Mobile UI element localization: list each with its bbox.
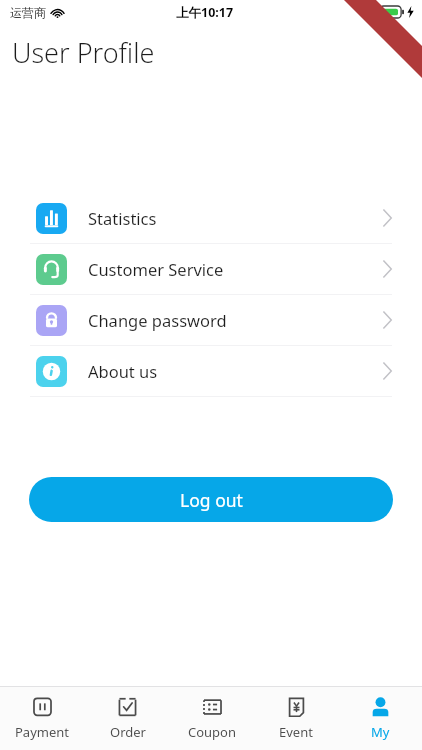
- button[interactable]: Coupon: [170, 687, 254, 750]
- staticText: Log out: [180, 488, 243, 512]
- button[interactable]: My: [338, 687, 422, 750]
- staticText: Statistics: [88, 207, 157, 229]
- staticText: Order: [110, 723, 146, 741]
- button[interactable]: About us: [0, 346, 422, 396]
- staticText: 运营商: [10, 5, 46, 20]
- button[interactable]: Event: [254, 687, 338, 750]
- button[interactable]: Order: [85, 687, 170, 750]
- button[interactable]: Log out: [29, 477, 393, 522]
- button[interactable]: Change password: [0, 295, 422, 345]
- staticText: Customer Service: [88, 258, 224, 280]
- staticText: My: [371, 723, 390, 741]
- button[interactable]: Payment: [0, 687, 85, 750]
- staticText: Payment: [15, 723, 70, 741]
- staticText: Change password: [88, 309, 227, 331]
- staticText: Event: [279, 723, 313, 741]
- button[interactable]: Customer Service: [0, 244, 422, 294]
- staticText: User Profile: [12, 34, 155, 71]
- button[interactable]: Statistics: [0, 193, 422, 243]
- staticText: 上午10:17: [176, 4, 234, 21]
- staticText: Coupon: [188, 723, 237, 741]
- staticText: About us: [88, 360, 158, 382]
